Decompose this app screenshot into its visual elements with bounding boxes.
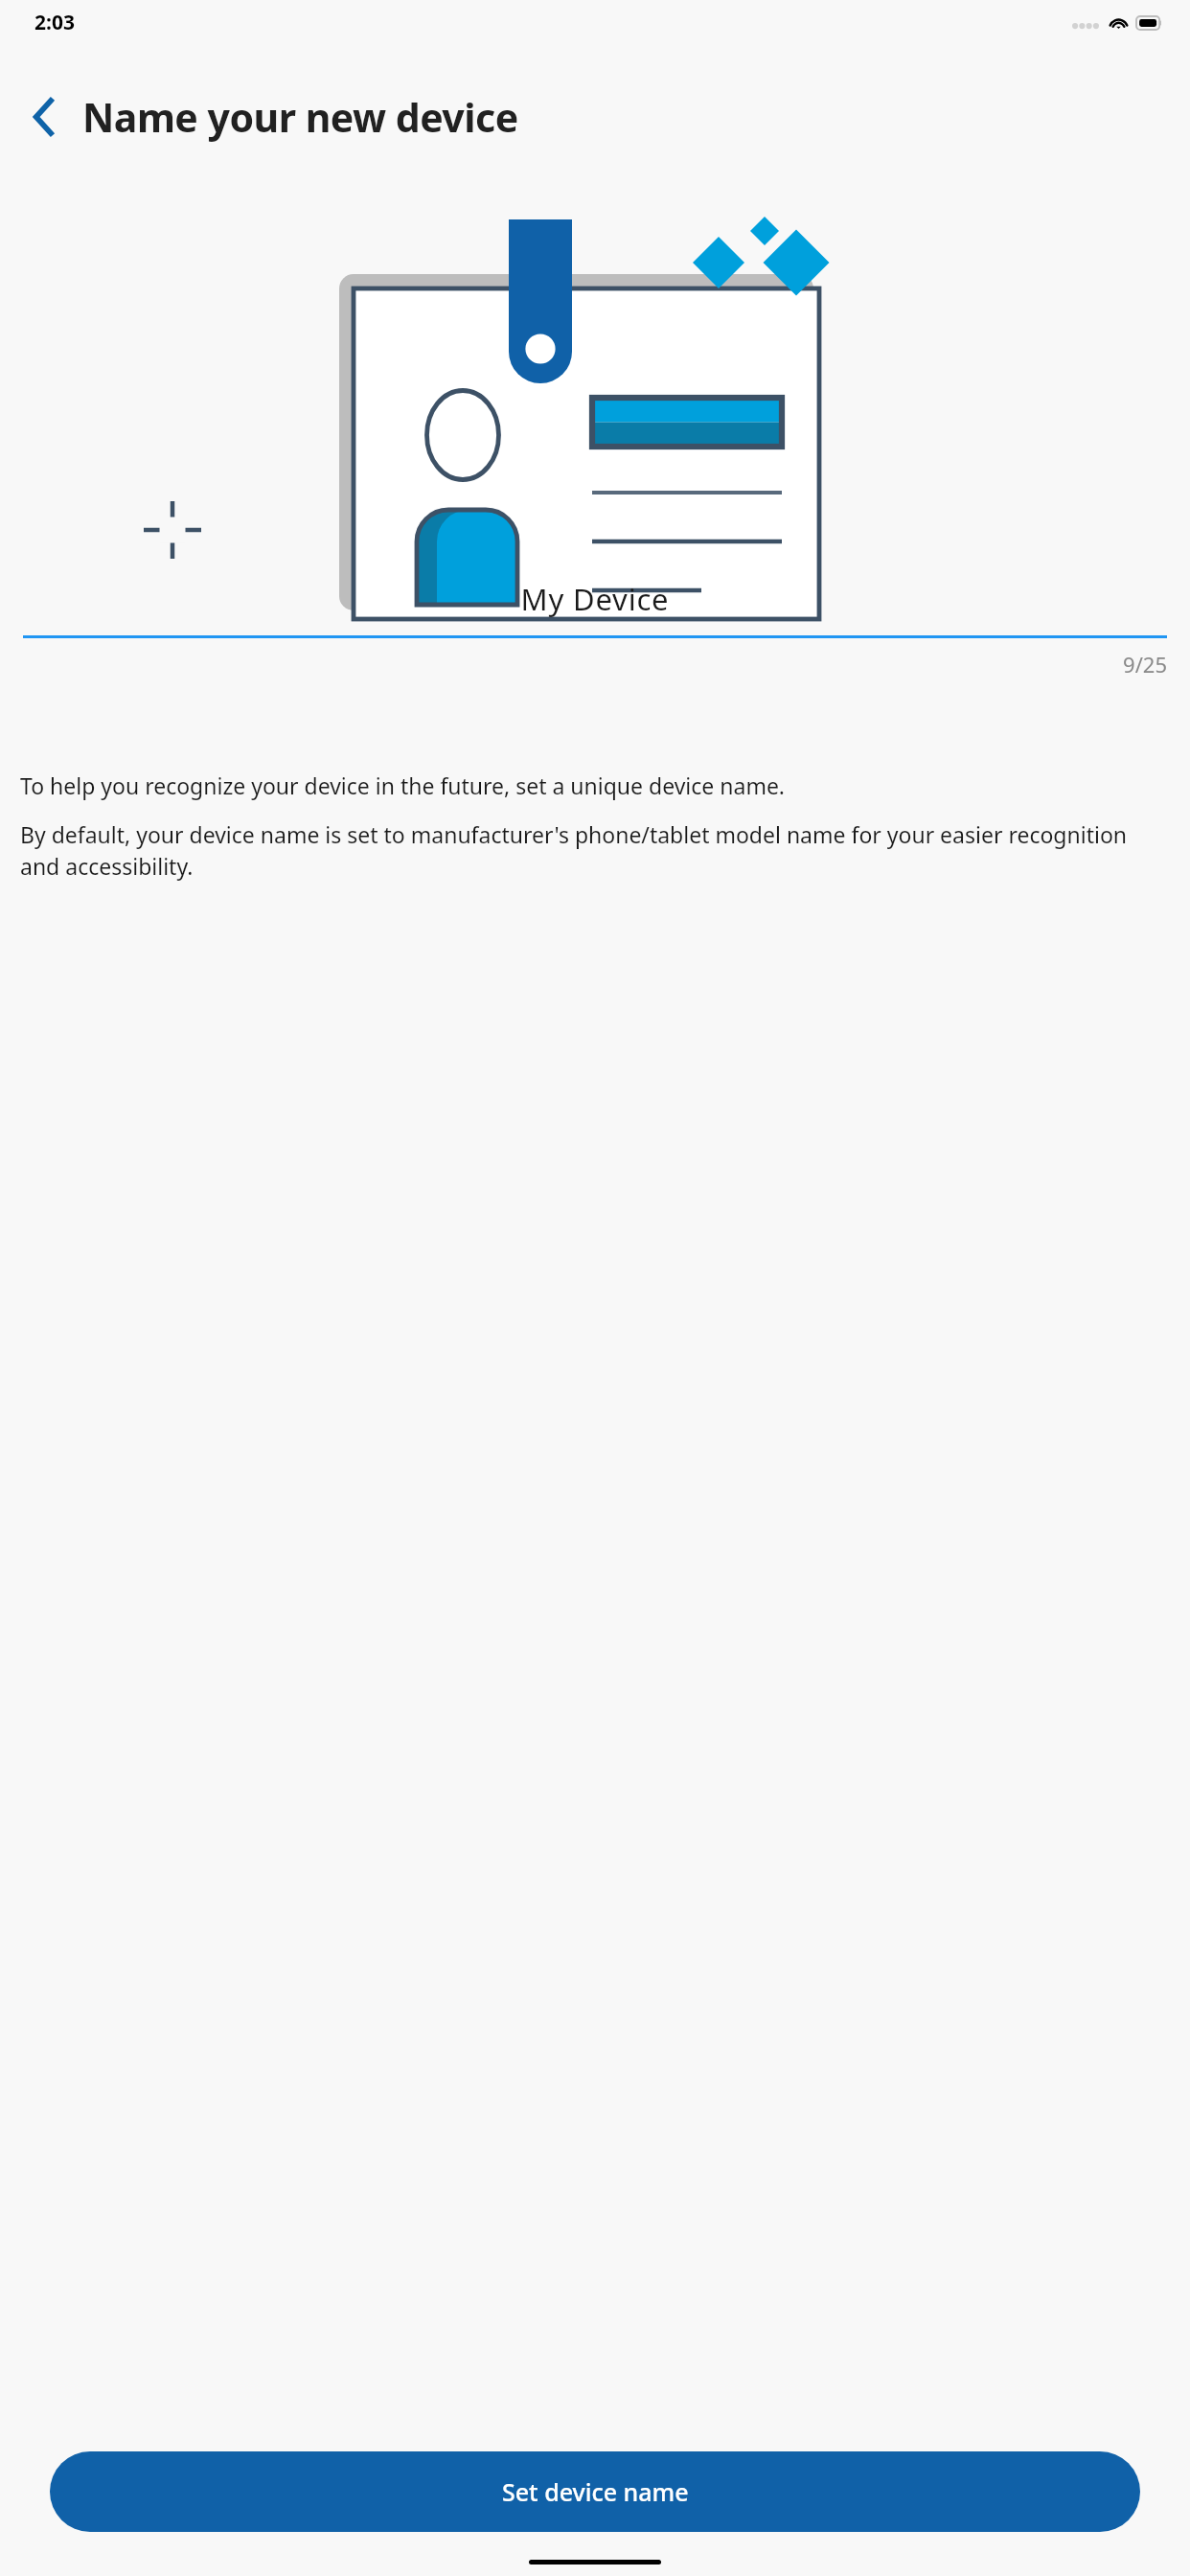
button[interactable]: Set device name [50, 2451, 1140, 2532]
staticText: By default, your device name is set to m… [20, 819, 1170, 882]
staticText: Set device name [502, 2475, 689, 2508]
staticText: 2:03 [34, 9, 75, 36]
staticText: To help you recognize your device in the… [20, 770, 786, 800]
button[interactable]: My Device [23, 579, 1167, 678]
staticText: My Device [23, 579, 1167, 619]
button[interactable]: Back [19, 92, 69, 142]
staticText: Name your new device [82, 90, 518, 144]
staticText: 9/25 [23, 650, 1167, 678]
